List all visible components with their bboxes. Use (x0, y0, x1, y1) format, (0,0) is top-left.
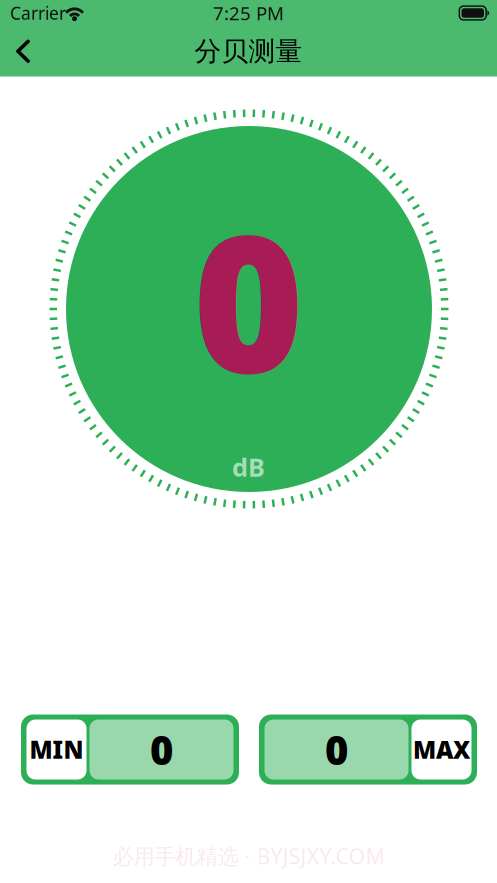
staticText: 0 (150, 723, 173, 776)
button[interactable]: 0 (259, 714, 477, 784)
staticText: 0 (193, 173, 304, 425)
staticText: 0 (325, 723, 348, 776)
staticText: Carrier (10, 1, 66, 24)
staticText: MAX (413, 734, 470, 765)
staticText: dB (232, 450, 265, 484)
button[interactable]: MIN (21, 714, 239, 784)
staticText: 7:25 PM (213, 1, 284, 25)
staticText: MIN (29, 734, 83, 765)
staticText: 分贝测量 (194, 35, 302, 68)
staticText: 必用手机精选 · BYJSJXY.COM (112, 842, 384, 870)
button[interactable]: Back (0, 26, 46, 76)
